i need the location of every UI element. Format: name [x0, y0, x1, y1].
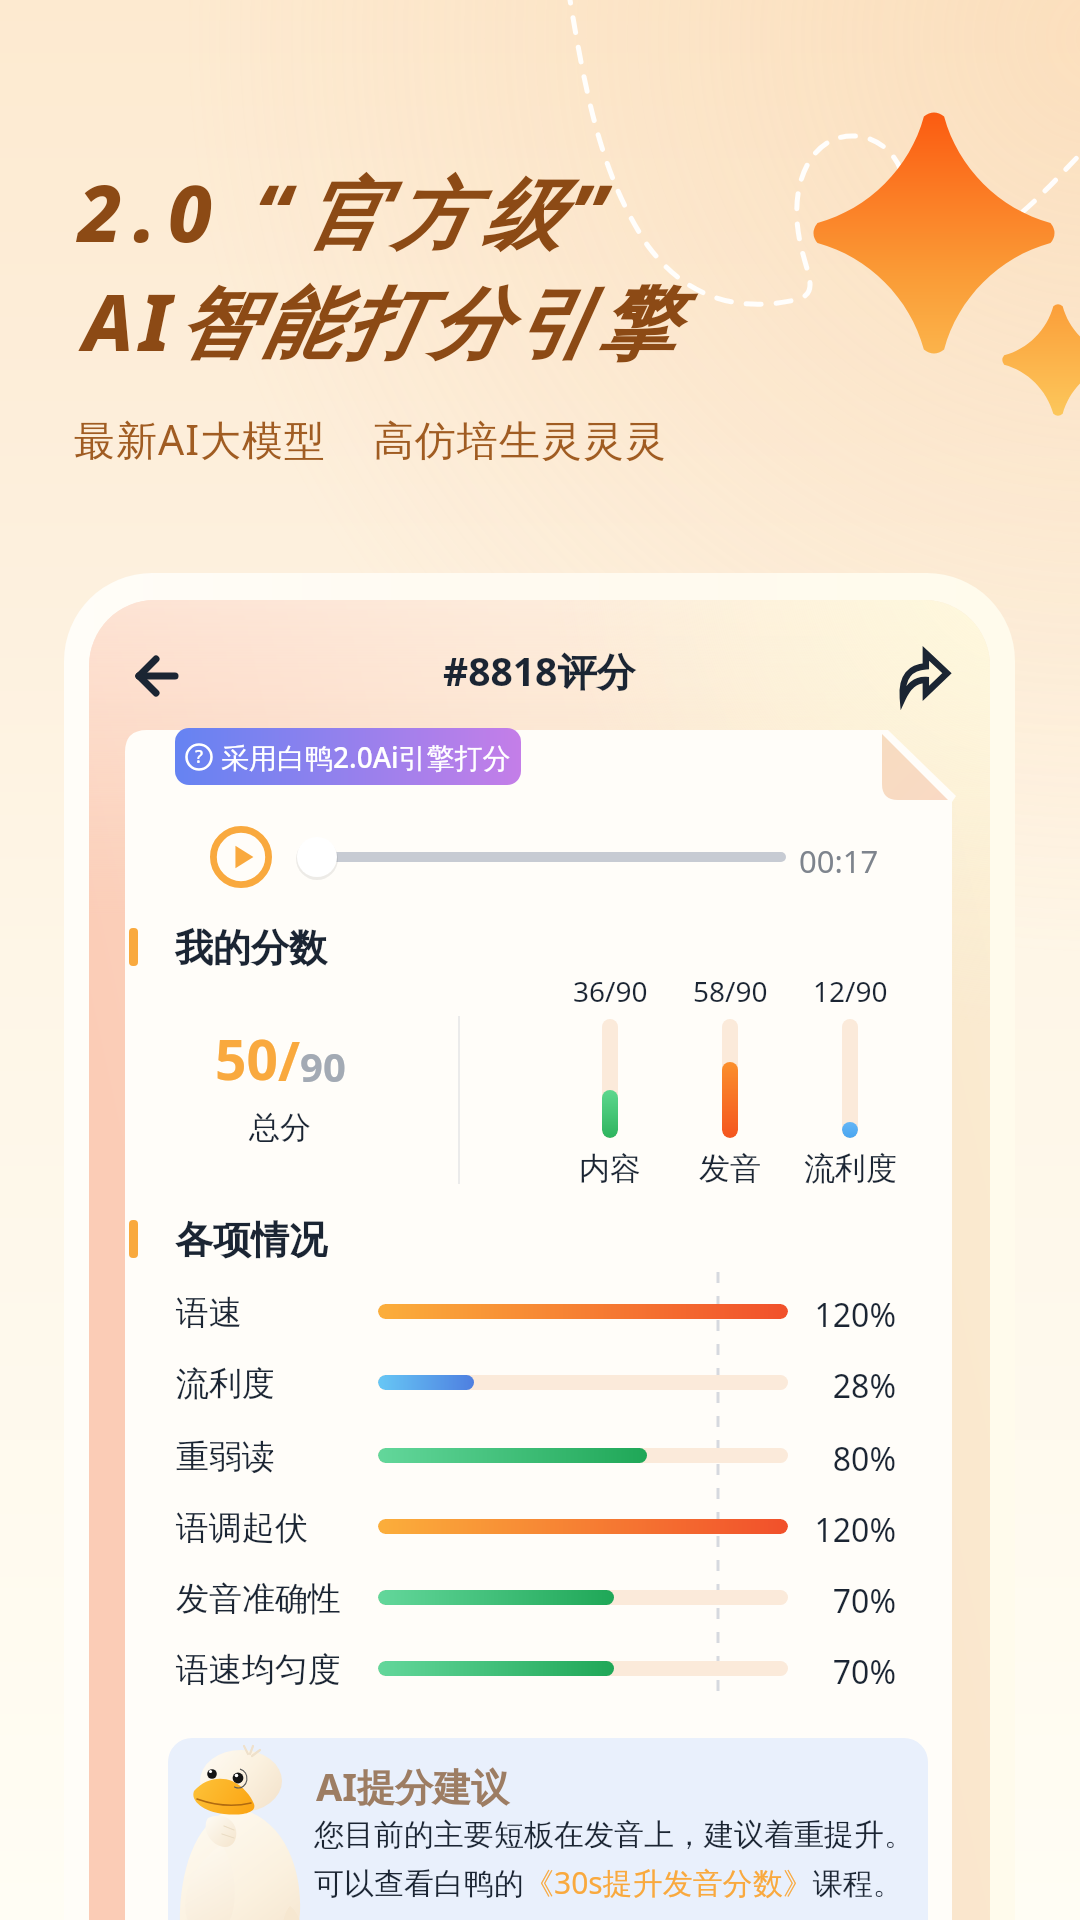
- staticText: 总分: [249, 1108, 311, 1147]
- staticText: 58/90: [693, 972, 768, 1010]
- staticText: 语速: [176, 1292, 242, 1334]
- staticText: 各项情况: [175, 1216, 327, 1264]
- staticText: 发音准确性: [176, 1578, 341, 1620]
- staticText: 90: [300, 1039, 346, 1093]
- staticText: 内容: [579, 1149, 641, 1188]
- button[interactable]: Back: [121, 640, 193, 712]
- staticText: /: [278, 1024, 300, 1096]
- staticText: 您目前的主要短板在发音上，建议着重提升。: [314, 1816, 914, 1854]
- staticText: 28%: [832, 1364, 896, 1408]
- staticText: ?: [195, 744, 204, 769]
- staticText: 采用白鸭2.0Ai引擎打分: [221, 738, 511, 776]
- staticText: 120%: [814, 1508, 896, 1552]
- staticText: 流利度: [176, 1363, 275, 1405]
- button[interactable]: AI提分建议: [168, 1738, 928, 1920]
- staticText: 语调起伏: [176, 1507, 308, 1549]
- staticText: 36/90: [573, 972, 648, 1010]
- staticText: 流利度: [804, 1149, 897, 1188]
- staticText: 80%: [832, 1437, 896, 1481]
- staticText: 可以查看白鸭的《30s提升发音分数》课程。: [314, 1862, 903, 1903]
- staticText: 我的分数: [175, 924, 327, 972]
- button[interactable]: Share: [885, 636, 963, 714]
- button[interactable]: ?: [175, 728, 521, 785]
- staticText: AI提分建议: [316, 1760, 510, 1812]
- staticText: AI智能打分引擎: [83, 268, 680, 375]
- staticText: 12/90: [813, 972, 888, 1010]
- staticText: 发音: [699, 1149, 761, 1188]
- staticText: 70%: [832, 1579, 896, 1623]
- staticText: 语速均匀度: [176, 1649, 341, 1691]
- staticText: 70%: [832, 1650, 896, 1694]
- staticText: 50: [215, 1021, 278, 1096]
- staticText: 00:17: [799, 840, 879, 882]
- staticText: 最新AI大模型 高仿培生灵灵灵: [74, 411, 667, 467]
- staticText: 重弱读: [176, 1436, 275, 1478]
- staticText: 120%: [814, 1293, 896, 1337]
- staticText: 2.0 “官方级”: [78, 159, 619, 266]
- button[interactable]: Play: [210, 826, 272, 888]
- staticText: #8818评分: [443, 644, 636, 697]
